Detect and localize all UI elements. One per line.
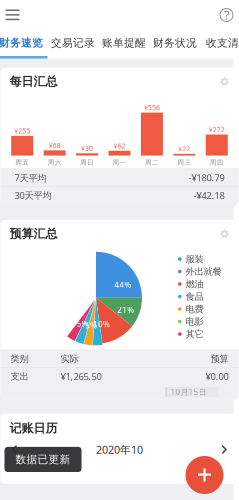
staticText: 数据已更新 bbox=[15, 453, 70, 466]
button[interactable]: Previous month bbox=[4, 441, 24, 457]
staticText: 支出 bbox=[10, 371, 28, 382]
staticText: 周五 bbox=[15, 158, 29, 167]
staticText: 21% bbox=[117, 304, 134, 315]
staticText: ¥556 bbox=[144, 103, 160, 112]
staticText: 5% bbox=[77, 318, 89, 329]
staticText: 预算 bbox=[210, 353, 228, 365]
staticText: 收支清 bbox=[206, 36, 239, 49]
staticText: 类别 bbox=[10, 353, 28, 365]
staticText: 记账日历 bbox=[9, 421, 57, 435]
staticText: 服装 bbox=[186, 253, 204, 265]
staticText: 7天平均 bbox=[14, 171, 46, 184]
button[interactable]: 收支清 bbox=[200, 33, 239, 53]
staticText: 周三 bbox=[177, 158, 191, 167]
staticText: 10月15日 bbox=[170, 387, 206, 397]
staticText: 5% bbox=[85, 320, 97, 331]
staticText: 周一 bbox=[112, 158, 126, 167]
staticText: 每日汇总 bbox=[9, 74, 57, 89]
staticText: ¥22 bbox=[178, 144, 190, 153]
button[interactable]: 财务状况 bbox=[149, 33, 200, 53]
staticText: 周日 bbox=[80, 158, 94, 167]
staticText: -¥180.79 bbox=[188, 171, 224, 184]
button[interactable]: Menu bbox=[0, 2, 26, 28]
staticText: 预算汇总 bbox=[9, 226, 57, 241]
staticText: 周六 bbox=[48, 158, 62, 167]
staticText: 燃油 bbox=[186, 278, 204, 290]
staticText: -¥42.18 bbox=[193, 189, 224, 201]
button[interactable]: Settings bbox=[216, 227, 232, 241]
staticText: 30天平均 bbox=[14, 189, 51, 201]
button[interactable]: Add transaction bbox=[181, 452, 227, 498]
button[interactable]: 账单提醒 bbox=[98, 33, 149, 53]
staticText: 周四 bbox=[210, 158, 224, 167]
staticText: 44% bbox=[114, 279, 131, 290]
staticText: ¥272 bbox=[209, 125, 225, 134]
button[interactable]: Next month bbox=[214, 441, 234, 457]
staticText: ¥0.00 bbox=[205, 370, 228, 383]
staticText: 周二 bbox=[145, 158, 159, 167]
staticText: ¥68 bbox=[49, 141, 61, 150]
staticText: 财务状况 bbox=[153, 36, 197, 49]
staticText: ¥255 bbox=[14, 126, 30, 135]
staticText: ¥30 bbox=[81, 144, 93, 153]
staticText: 食品 bbox=[186, 291, 204, 302]
staticText: 电费 bbox=[186, 303, 204, 315]
staticText: 10% bbox=[93, 319, 110, 329]
staticText: 外出就餐 bbox=[186, 266, 222, 277]
staticText: 其它 bbox=[186, 328, 204, 340]
button[interactable]: 财务速览 bbox=[0, 33, 47, 53]
staticText: 实际 bbox=[60, 353, 78, 365]
staticText: 2020年10 bbox=[96, 442, 143, 457]
staticText: ¥1,265.50 bbox=[60, 370, 101, 383]
staticText: 交易记录 bbox=[51, 36, 95, 49]
button[interactable]: Help bbox=[212, 2, 239, 28]
button[interactable]: 交易记录 bbox=[47, 33, 98, 53]
button[interactable]: Settings bbox=[216, 75, 232, 89]
staticText: 电影 bbox=[186, 316, 204, 327]
staticText: ? bbox=[224, 7, 229, 23]
staticText: 账单提醒 bbox=[102, 36, 146, 49]
staticText: 财务速览 bbox=[0, 36, 43, 49]
staticText: ¥62 bbox=[113, 141, 125, 150]
